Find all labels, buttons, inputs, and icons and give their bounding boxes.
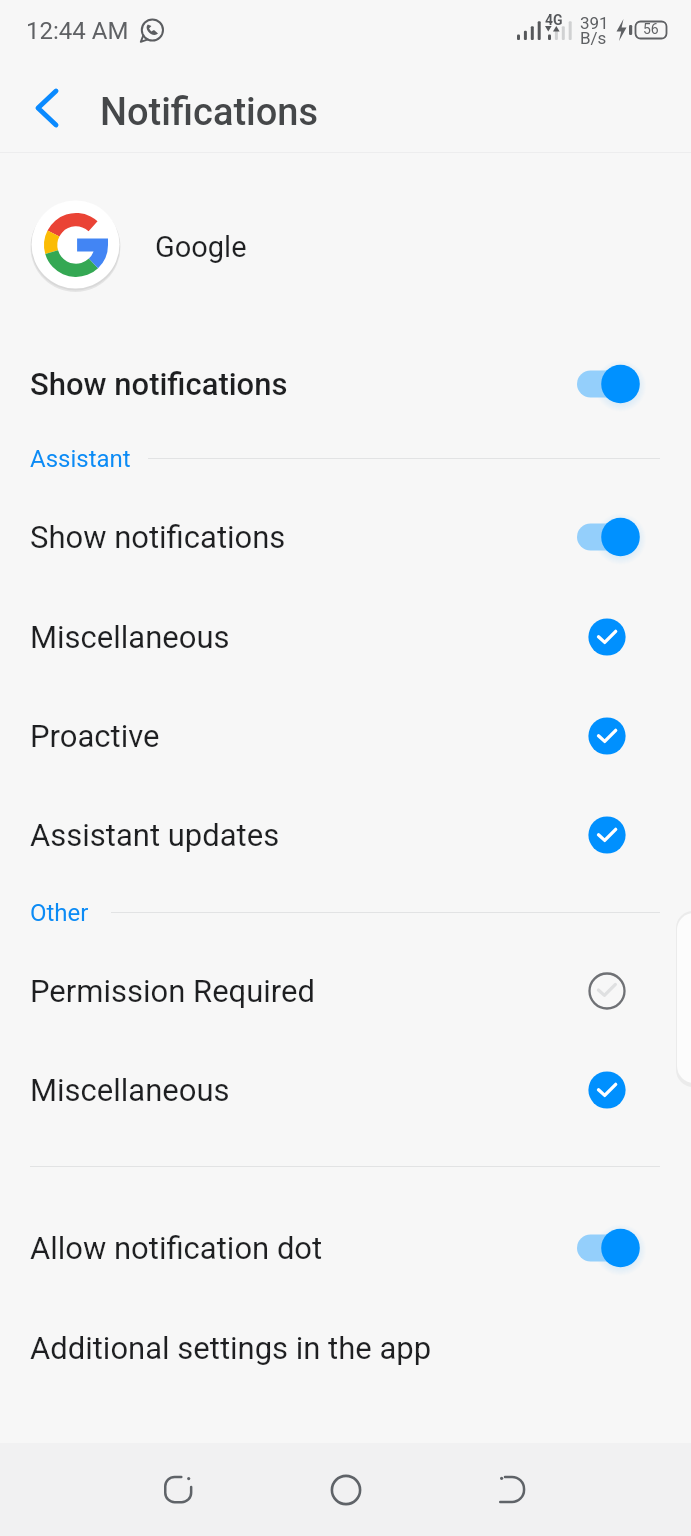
button[interactable]: Assistant updates <box>0 785 691 884</box>
staticText: 12:44 AM <box>26 17 129 45</box>
button[interactable]: Back <box>15 76 79 140</box>
button[interactable]: Proactive <box>0 686 691 785</box>
button[interactable]: Back <box>429 1456 596 1523</box>
staticText: Other <box>30 899 89 927</box>
button[interactable]: Additional settings in the app <box>0 1298 691 1397</box>
staticText: Allow notification dot <box>30 1230 577 1266</box>
button[interactable]: Allow notification dot <box>0 1198 691 1297</box>
staticText: 391 <box>580 13 609 33</box>
staticText: Google <box>155 230 247 264</box>
button[interactable]: Show notifications <box>0 487 691 586</box>
staticText: Additional settings in the app <box>30 1330 651 1366</box>
staticText: Assistant <box>30 445 131 473</box>
button[interactable]: Home <box>262 1456 429 1523</box>
staticText: Show notifications <box>30 366 577 402</box>
button[interactable]: Show notifications <box>0 334 691 433</box>
staticText: Notifications <box>100 90 318 135</box>
staticText: Show notifications <box>30 519 577 555</box>
staticText: 4G <box>545 12 563 28</box>
button[interactable]: Miscellaneous <box>0 1040 691 1139</box>
staticText: Permission Required <box>30 973 577 1009</box>
staticText: Miscellaneous <box>30 619 577 655</box>
staticText: B/s <box>580 28 607 48</box>
button[interactable]: Miscellaneous <box>0 587 691 686</box>
button[interactable]: Permission Required <box>0 941 691 1040</box>
staticText: Assistant updates <box>30 817 577 853</box>
button[interactable]: Recents <box>95 1456 262 1523</box>
staticText: 56 <box>643 21 659 37</box>
staticText: Proactive <box>30 718 577 754</box>
staticText: Miscellaneous <box>30 1072 577 1108</box>
